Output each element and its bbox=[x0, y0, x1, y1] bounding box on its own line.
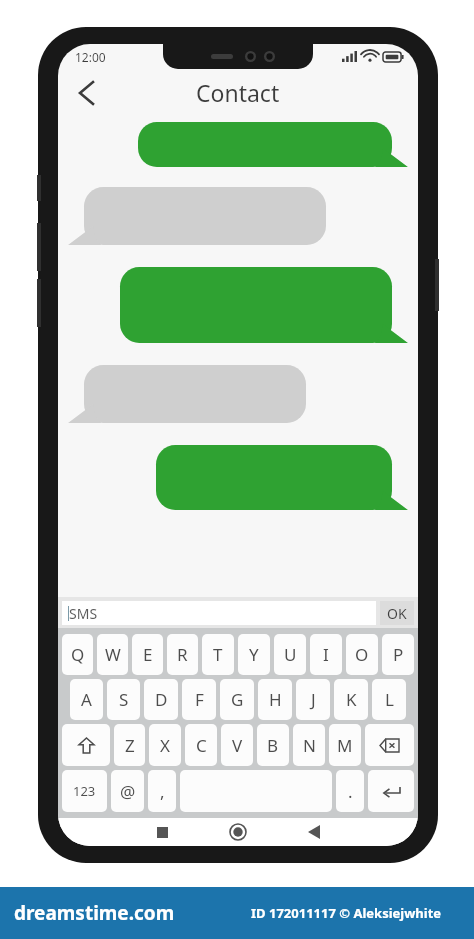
staticText: F bbox=[195, 688, 204, 711]
button[interactable]: A bbox=[70, 679, 103, 720]
button[interactable]: F bbox=[182, 679, 216, 720]
button[interactable]: @ bbox=[111, 770, 144, 812]
staticText: , bbox=[160, 780, 165, 803]
staticText: A bbox=[81, 688, 92, 711]
staticText: T bbox=[213, 643, 223, 666]
staticText: 12:00 bbox=[75, 49, 106, 65]
button[interactable]: D bbox=[144, 679, 178, 720]
button[interactable]: E bbox=[132, 634, 163, 675]
button[interactable]: J bbox=[296, 679, 330, 720]
button[interactable]: Key bbox=[62, 724, 110, 766]
staticText: I bbox=[323, 643, 329, 666]
staticText: @ bbox=[120, 780, 136, 803]
staticText: Z bbox=[125, 734, 135, 757]
button[interactable]: M bbox=[329, 724, 361, 766]
staticText: S bbox=[119, 688, 129, 711]
staticText: B bbox=[267, 734, 279, 757]
staticText: C bbox=[196, 734, 207, 757]
staticText: D bbox=[155, 688, 168, 711]
staticText: dreamstime.com bbox=[14, 900, 175, 926]
staticText: N bbox=[303, 734, 316, 757]
button[interactable]: O bbox=[346, 634, 378, 675]
staticText: L bbox=[385, 688, 394, 711]
staticText: W bbox=[105, 643, 121, 666]
staticText: ID 172011117 © Aleksiejwhite bbox=[251, 904, 442, 922]
button[interactable]: Y bbox=[238, 634, 270, 675]
button[interactable]: N bbox=[293, 724, 325, 766]
staticText: X bbox=[160, 734, 170, 757]
button[interactable]: X bbox=[149, 724, 181, 766]
button[interactable] bbox=[73, 365, 306, 423]
staticText: Y bbox=[249, 643, 259, 666]
staticText: OK bbox=[387, 604, 407, 623]
button[interactable]: K bbox=[334, 679, 368, 720]
staticText: . bbox=[348, 780, 353, 803]
button[interactable] bbox=[120, 267, 403, 343]
button[interactable]: I bbox=[310, 634, 342, 675]
button[interactable]: S bbox=[107, 679, 140, 720]
staticText: 123 bbox=[73, 782, 96, 800]
button[interactable]: H bbox=[258, 679, 292, 720]
button[interactable]: Key bbox=[365, 724, 414, 766]
staticText: G bbox=[231, 688, 244, 711]
button[interactable]: 123 bbox=[62, 770, 107, 812]
button[interactable]: T bbox=[202, 634, 234, 675]
button[interactable]: Z bbox=[114, 724, 145, 766]
staticText: J bbox=[311, 688, 316, 711]
button[interactable]: Back bbox=[66, 73, 106, 113]
staticText: Q bbox=[71, 643, 85, 666]
button[interactable] bbox=[138, 122, 403, 167]
button[interactable]: , bbox=[148, 770, 176, 812]
button[interactable]: R bbox=[167, 634, 198, 675]
button[interactable]: C bbox=[185, 724, 217, 766]
button[interactable]: Home bbox=[221, 818, 255, 846]
button[interactable] bbox=[73, 187, 326, 245]
button[interactable]: B bbox=[257, 724, 289, 766]
button[interactable]: Q bbox=[62, 634, 93, 675]
staticText: O bbox=[355, 643, 369, 666]
button[interactable]: W bbox=[97, 634, 128, 675]
button[interactable]: SMS bbox=[68, 601, 376, 625]
button[interactable]: Back bbox=[297, 818, 331, 846]
button[interactable]: OK bbox=[380, 601, 414, 625]
staticText: H bbox=[269, 688, 282, 711]
button[interactable]: G bbox=[220, 679, 254, 720]
staticText: P bbox=[393, 643, 404, 666]
staticText: K bbox=[346, 688, 357, 711]
staticText: E bbox=[143, 643, 153, 666]
staticText: SMS bbox=[69, 604, 98, 623]
button[interactable]: P bbox=[382, 634, 414, 675]
staticText: R bbox=[177, 643, 188, 666]
button[interactable] bbox=[156, 445, 403, 510]
staticText: Contact bbox=[196, 77, 280, 108]
staticText: M bbox=[337, 734, 353, 757]
button[interactable]: V bbox=[221, 724, 253, 766]
button[interactable]: Recents bbox=[145, 818, 179, 846]
button[interactable]: . bbox=[336, 770, 364, 812]
button[interactable]: U bbox=[274, 634, 306, 675]
staticText: U bbox=[284, 643, 297, 666]
button[interactable]: Key bbox=[368, 770, 414, 812]
button[interactable]: L bbox=[372, 679, 406, 720]
staticText: V bbox=[232, 734, 243, 757]
